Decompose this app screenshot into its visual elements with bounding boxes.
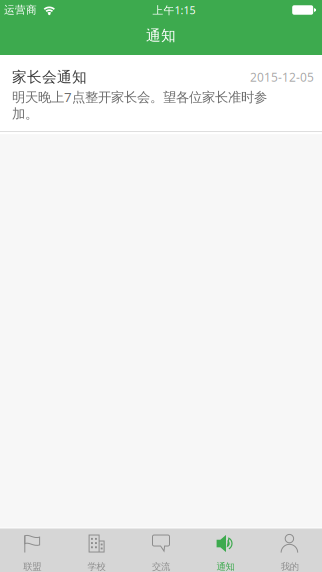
staticText: 家长会通知 (12, 68, 87, 86)
staticText: 联盟 (23, 561, 41, 572)
button[interactable]: 家长会通知 (0, 55, 322, 131)
button[interactable]: 我的 (258, 528, 322, 572)
button[interactable]: 交流 (129, 528, 193, 572)
staticText: 通知 (146, 26, 176, 44)
button[interactable]: 通知 (193, 528, 258, 572)
staticText: 通知 (216, 561, 234, 572)
staticText: 明天晚上7点整开家长会。望各位家长准时参加。 (12, 88, 267, 122)
button[interactable]: 联盟 (0, 528, 64, 572)
staticText: 上午1:15 (153, 3, 196, 17)
staticText: 交流 (152, 561, 170, 572)
staticText: 运营商 (4, 3, 37, 16)
staticText: 我的 (281, 561, 299, 572)
staticText: 学校 (88, 561, 106, 572)
staticText: 2015-12-05 (250, 69, 314, 85)
button[interactable]: 学校 (64, 528, 129, 572)
